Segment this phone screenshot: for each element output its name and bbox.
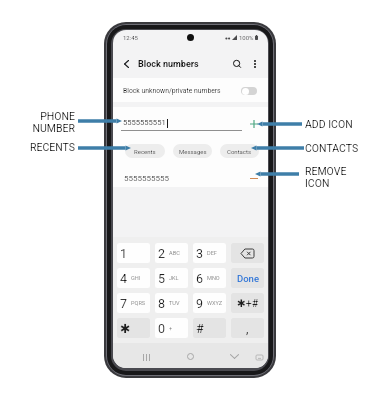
button[interactable]: ,	[231, 318, 264, 338]
staticText: Block unknown/private numbers	[123, 87, 221, 95]
staticText: #	[196, 321, 204, 336]
staticText: TUV	[169, 300, 180, 307]
staticText: 5555555551	[123, 118, 166, 127]
button[interactable]: 1	[117, 243, 150, 263]
button[interactable]: More options	[247, 56, 263, 72]
other: Backspace	[231, 243, 264, 263]
staticText: ✱	[120, 321, 131, 336]
staticText: ADD ICON	[305, 118, 380, 130]
staticText: Block numbers	[138, 59, 199, 70]
button[interactable]: 9	[193, 293, 226, 313]
button[interactable]: ✱+#	[231, 293, 264, 313]
button[interactable]: 5	[155, 268, 188, 288]
staticText: 9	[196, 296, 204, 311]
staticText: PHONE NUMBER	[0, 110, 75, 135]
staticText: ,	[246, 321, 249, 336]
button[interactable]: 0	[155, 318, 188, 338]
button[interactable]: Hide keyboard	[228, 350, 241, 363]
staticText: PQRS	[131, 300, 146, 307]
staticText: MNO	[207, 275, 220, 282]
button[interactable]: Search	[228, 55, 246, 73]
button[interactable]: Home	[184, 350, 197, 363]
staticText: 12:45	[123, 34, 138, 41]
button[interactable]: Done	[231, 268, 264, 288]
staticText: WXYZ	[207, 300, 223, 307]
staticText: 8	[158, 296, 166, 311]
button[interactable]: Recents	[125, 144, 165, 158]
staticText: 5	[158, 271, 166, 286]
button[interactable]: Messages	[173, 144, 212, 158]
button[interactable]: 3	[193, 243, 226, 263]
staticText: 7	[120, 296, 128, 311]
staticText: RECENTS	[0, 141, 75, 153]
button[interactable]: 6	[193, 268, 226, 288]
button[interactable]: Block unknown/private numbers	[113, 79, 268, 103]
button[interactable]: #	[193, 318, 226, 338]
staticText: JKL	[169, 275, 179, 282]
staticText: CONTACTS	[305, 142, 380, 154]
staticText: GHI	[131, 275, 141, 282]
button[interactable]: 2	[155, 243, 188, 263]
staticText: 0	[158, 321, 166, 336]
staticText: +	[169, 325, 173, 332]
staticText: 4	[120, 271, 128, 286]
staticText: REMOVE ICON	[305, 165, 380, 190]
button[interactable]: Add number	[249, 119, 259, 129]
staticText: Messages	[179, 148, 207, 155]
button[interactable]: Backspace	[231, 243, 264, 263]
button[interactable]: 4	[117, 268, 150, 288]
button[interactable]: 5555555555	[113, 168, 268, 188]
button[interactable]: Switch keyboard	[254, 352, 265, 363]
button[interactable]: Contacts	[220, 144, 259, 158]
staticText: Done	[237, 273, 259, 284]
staticText: Recents	[134, 148, 156, 155]
button[interactable]: Remove number	[249, 173, 259, 183]
button[interactable]: Recent apps	[140, 351, 153, 364]
staticText: 1	[120, 246, 128, 261]
button[interactable]: 7	[117, 293, 150, 313]
staticText: ABC	[169, 250, 180, 257]
button[interactable]: ✱	[117, 318, 150, 338]
button[interactable]: Navigate up	[118, 56, 134, 72]
staticText: DEF	[207, 250, 217, 257]
staticText: 2	[158, 246, 166, 261]
staticText: 6	[196, 271, 204, 286]
staticText: Contacts	[227, 148, 252, 155]
staticText: 100%	[239, 34, 254, 41]
button[interactable]: 8	[155, 293, 188, 313]
staticText: ✱+#	[237, 297, 259, 309]
staticText: 3	[196, 246, 204, 261]
staticText: 5555555555	[124, 174, 169, 183]
